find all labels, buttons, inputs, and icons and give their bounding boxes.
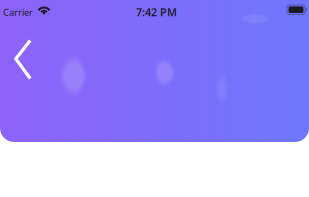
button[interactable]: Back — [5, 33, 42, 85]
staticText: Carrier — [3, 6, 33, 18]
staticText: 7:42 PM — [136, 5, 177, 19]
